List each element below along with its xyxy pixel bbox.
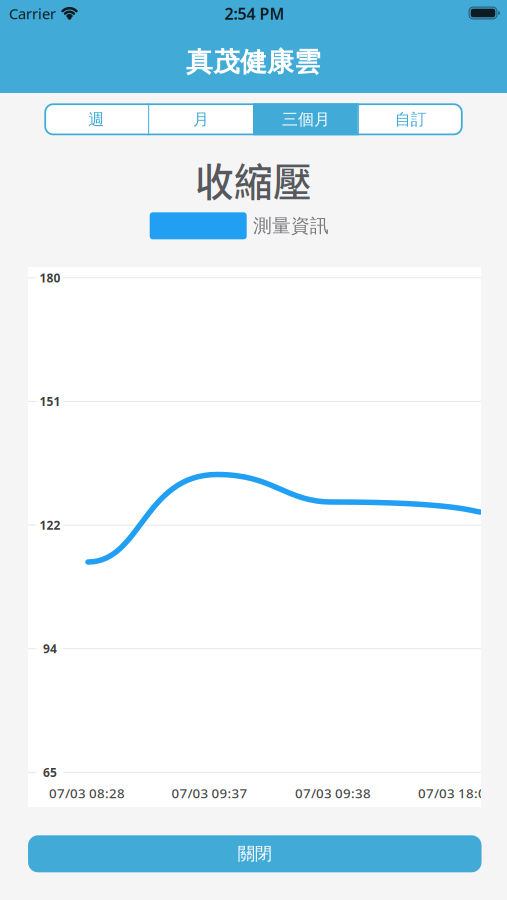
staticText: 收縮壓 <box>195 151 312 207</box>
staticText: 月 <box>193 109 209 129</box>
button[interactable]: 月 <box>149 103 253 135</box>
staticText: 2:54 PM <box>224 3 284 24</box>
staticText: Carrier <box>9 4 56 23</box>
staticText: 151 <box>39 393 60 409</box>
staticText: 65 <box>43 764 57 780</box>
staticText: 測量資訊 <box>253 214 329 237</box>
button[interactable]: 三個月 <box>254 103 358 135</box>
staticText: 180 <box>39 270 60 286</box>
staticText: 07/03 09:37 <box>171 784 247 802</box>
staticText: 週 <box>88 109 104 129</box>
button[interactable]: 自訂 <box>359 103 463 135</box>
button[interactable]: 關閉 <box>28 835 482 872</box>
staticText: 94 <box>43 641 57 657</box>
staticText: 07/03 18:02 <box>418 784 494 802</box>
staticText: 關閉 <box>238 843 272 864</box>
staticText: 07/03 09:38 <box>295 784 371 802</box>
staticText: 真茂健康雲 <box>186 46 321 78</box>
button[interactable]: 週 <box>44 103 148 135</box>
staticText: 自訂 <box>395 109 427 129</box>
staticText: 07/03 08:28 <box>49 784 125 802</box>
staticText: 122 <box>39 517 60 533</box>
staticText: 三個月 <box>282 109 330 129</box>
